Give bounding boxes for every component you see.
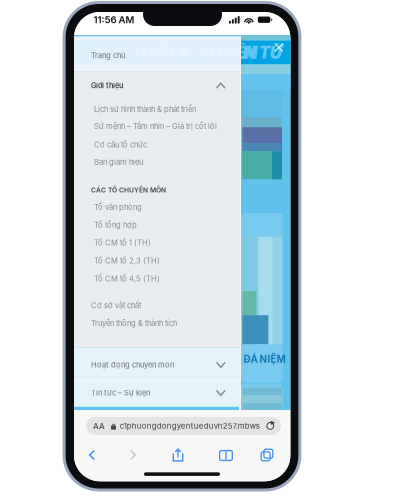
staticText: 11:56 AM — [93, 14, 134, 26]
button[interactable]: Tabs — [256, 446, 278, 464]
button[interactable]: Ban giám hiệu — [74, 155, 239, 169]
button[interactable]: Close — [271, 40, 286, 55]
staticText: CÁC TỔ CHUYÊN MÔN — [91, 186, 166, 194]
button[interactable]: Tổ CM tổ 1 (TH) — [74, 236, 239, 250]
button[interactable]: Tổ tổng hợp — [74, 218, 239, 232]
staticText: Ban giám hiệu — [94, 157, 143, 166]
staticText: Tổ tổng hợp — [94, 220, 137, 229]
staticText: Lịch sử hình thành & phát triển — [94, 105, 196, 114]
staticText: Sứ mệnh – Tầm nhìn – Giá trị cốt lõi — [94, 122, 217, 131]
button[interactable]: Lịch sử hình thành & phát triển — [74, 102, 239, 116]
staticText: N TỬ — [243, 43, 282, 63]
button[interactable]: Tin tức – Sự kiện — [74, 384, 239, 402]
staticText: Cơ sở vật chất — [91, 301, 141, 310]
staticText: AA — [93, 421, 105, 431]
button[interactable]: Forward — [122, 446, 144, 464]
staticText: Truyền thông & thành tích — [91, 319, 177, 328]
button[interactable]: Back — [81, 446, 103, 464]
button[interactable]: Cơ cấu tổ chức — [74, 138, 239, 152]
button[interactable]: AA — [86, 417, 281, 435]
button[interactable]: CÁC TỔ CHUYÊN MÔN — [74, 183, 239, 197]
staticText: Giới thiệu — [91, 81, 123, 90]
button[interactable]: Tổ văn phòng — [74, 200, 239, 214]
button[interactable]: Sứ mệnh – Tầm nhìn – Giá trị cốt lõi — [74, 119, 239, 133]
button[interactable]: Cơ sở vật chất — [74, 299, 239, 313]
button[interactable]: Truyền thông & thành tích — [74, 316, 239, 330]
button[interactable]: Hoạt động chuyên môn — [74, 356, 239, 374]
button[interactable]: Trang chủ — [74, 49, 239, 63]
staticText: Tổ CM tổ 1 (TH) — [94, 238, 151, 247]
staticText: c1phuongdongyentueduvn257.mbws — [120, 421, 260, 431]
button[interactable]: Giới thiệu — [74, 77, 239, 95]
button[interactable]: Share — [167, 445, 189, 465]
staticText: ĐÁ NIỆM — [243, 353, 285, 365]
staticText: Tin tức – Sự kiện — [91, 388, 150, 397]
staticText: Hoạt động chuyên môn — [91, 360, 174, 369]
staticText: Tổ văn phòng — [94, 203, 142, 212]
staticText: N ĐIỆN — [201, 43, 258, 63]
staticText: Tổ CM tổ 2,3 (TH) — [94, 256, 160, 265]
button[interactable]: Tổ CM tổ 4,5 (TH) — [74, 272, 239, 286]
staticText: Trang chủ — [91, 51, 125, 60]
button[interactable]: Bookmarks — [215, 447, 237, 464]
button[interactable]: Tổ CM tổ 2,3 (TH) — [74, 254, 239, 268]
staticText: Cơ cấu tổ chức — [94, 140, 147, 149]
staticText: Tổ CM tổ 4,5 (TH) — [94, 274, 160, 283]
